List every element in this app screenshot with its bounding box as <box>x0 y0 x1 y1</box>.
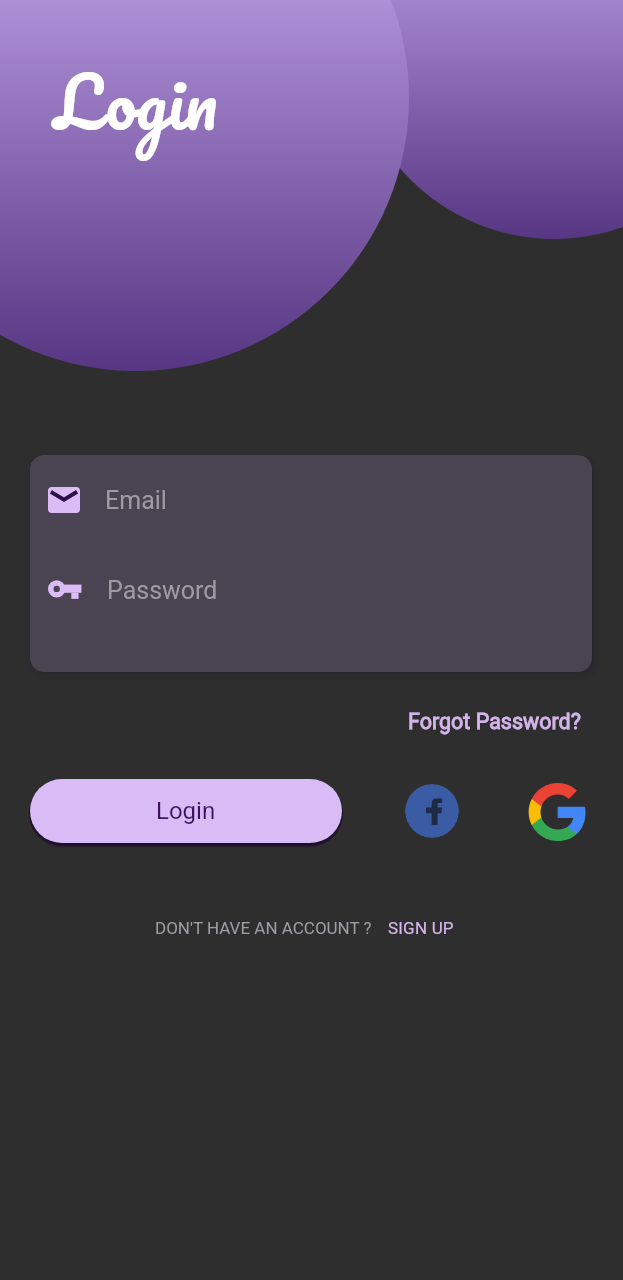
button[interactable]: Login <box>30 779 342 843</box>
staticText: Email <box>105 486 167 515</box>
button[interactable]: SIGN UP <box>372 914 462 942</box>
staticText: Login <box>156 797 216 825</box>
staticText: Login <box>54 41 218 160</box>
button[interactable]: Sign in with Facebook <box>405 784 459 838</box>
button[interactable]: Password <box>30 545 592 635</box>
button[interactable]: Email <box>30 455 592 545</box>
staticText: DON'T HAVE AN ACCOUNT ? <box>155 918 372 938</box>
staticText: Forgot Password? <box>408 709 581 734</box>
button[interactable]: Sign in with Google <box>529 783 586 840</box>
button[interactable]: Forgot Password? <box>400 703 589 740</box>
staticText: Password <box>107 576 218 605</box>
staticText: SIGN UP <box>388 918 454 938</box>
